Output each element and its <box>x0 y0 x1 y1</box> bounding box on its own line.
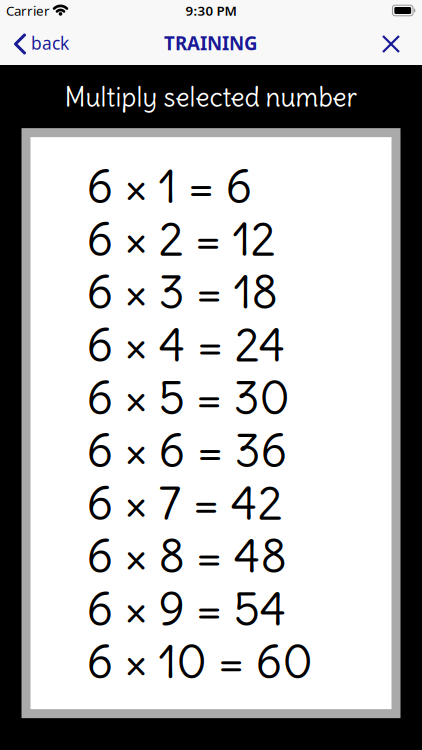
staticText: 6 × 7 = 42 <box>86 474 282 532</box>
staticText: 6 × 9 = 54 <box>86 580 286 638</box>
staticText: 6 × 2 = 12 <box>86 210 275 268</box>
button[interactable]: back <box>0 31 69 54</box>
button[interactable]: Close <box>383 34 422 52</box>
staticText: 6 × 1 = 6 <box>86 158 252 215</box>
staticText: 6 × 10 = 60 <box>86 633 312 691</box>
staticText: 6 × 5 = 30 <box>86 369 289 427</box>
staticText: Multiply selected number <box>64 81 357 114</box>
staticText: back <box>31 31 69 54</box>
staticText: 9:30 PM <box>185 2 236 19</box>
staticText: 6 × 8 = 48 <box>86 527 286 585</box>
staticText: Carrier <box>6 2 50 19</box>
staticText: 6 × 3 = 18 <box>86 263 277 321</box>
staticText: TRAINING <box>164 31 258 55</box>
staticText: 6 × 6 = 36 <box>86 422 287 479</box>
staticText: 6 × 4 = 24 <box>86 316 285 374</box>
